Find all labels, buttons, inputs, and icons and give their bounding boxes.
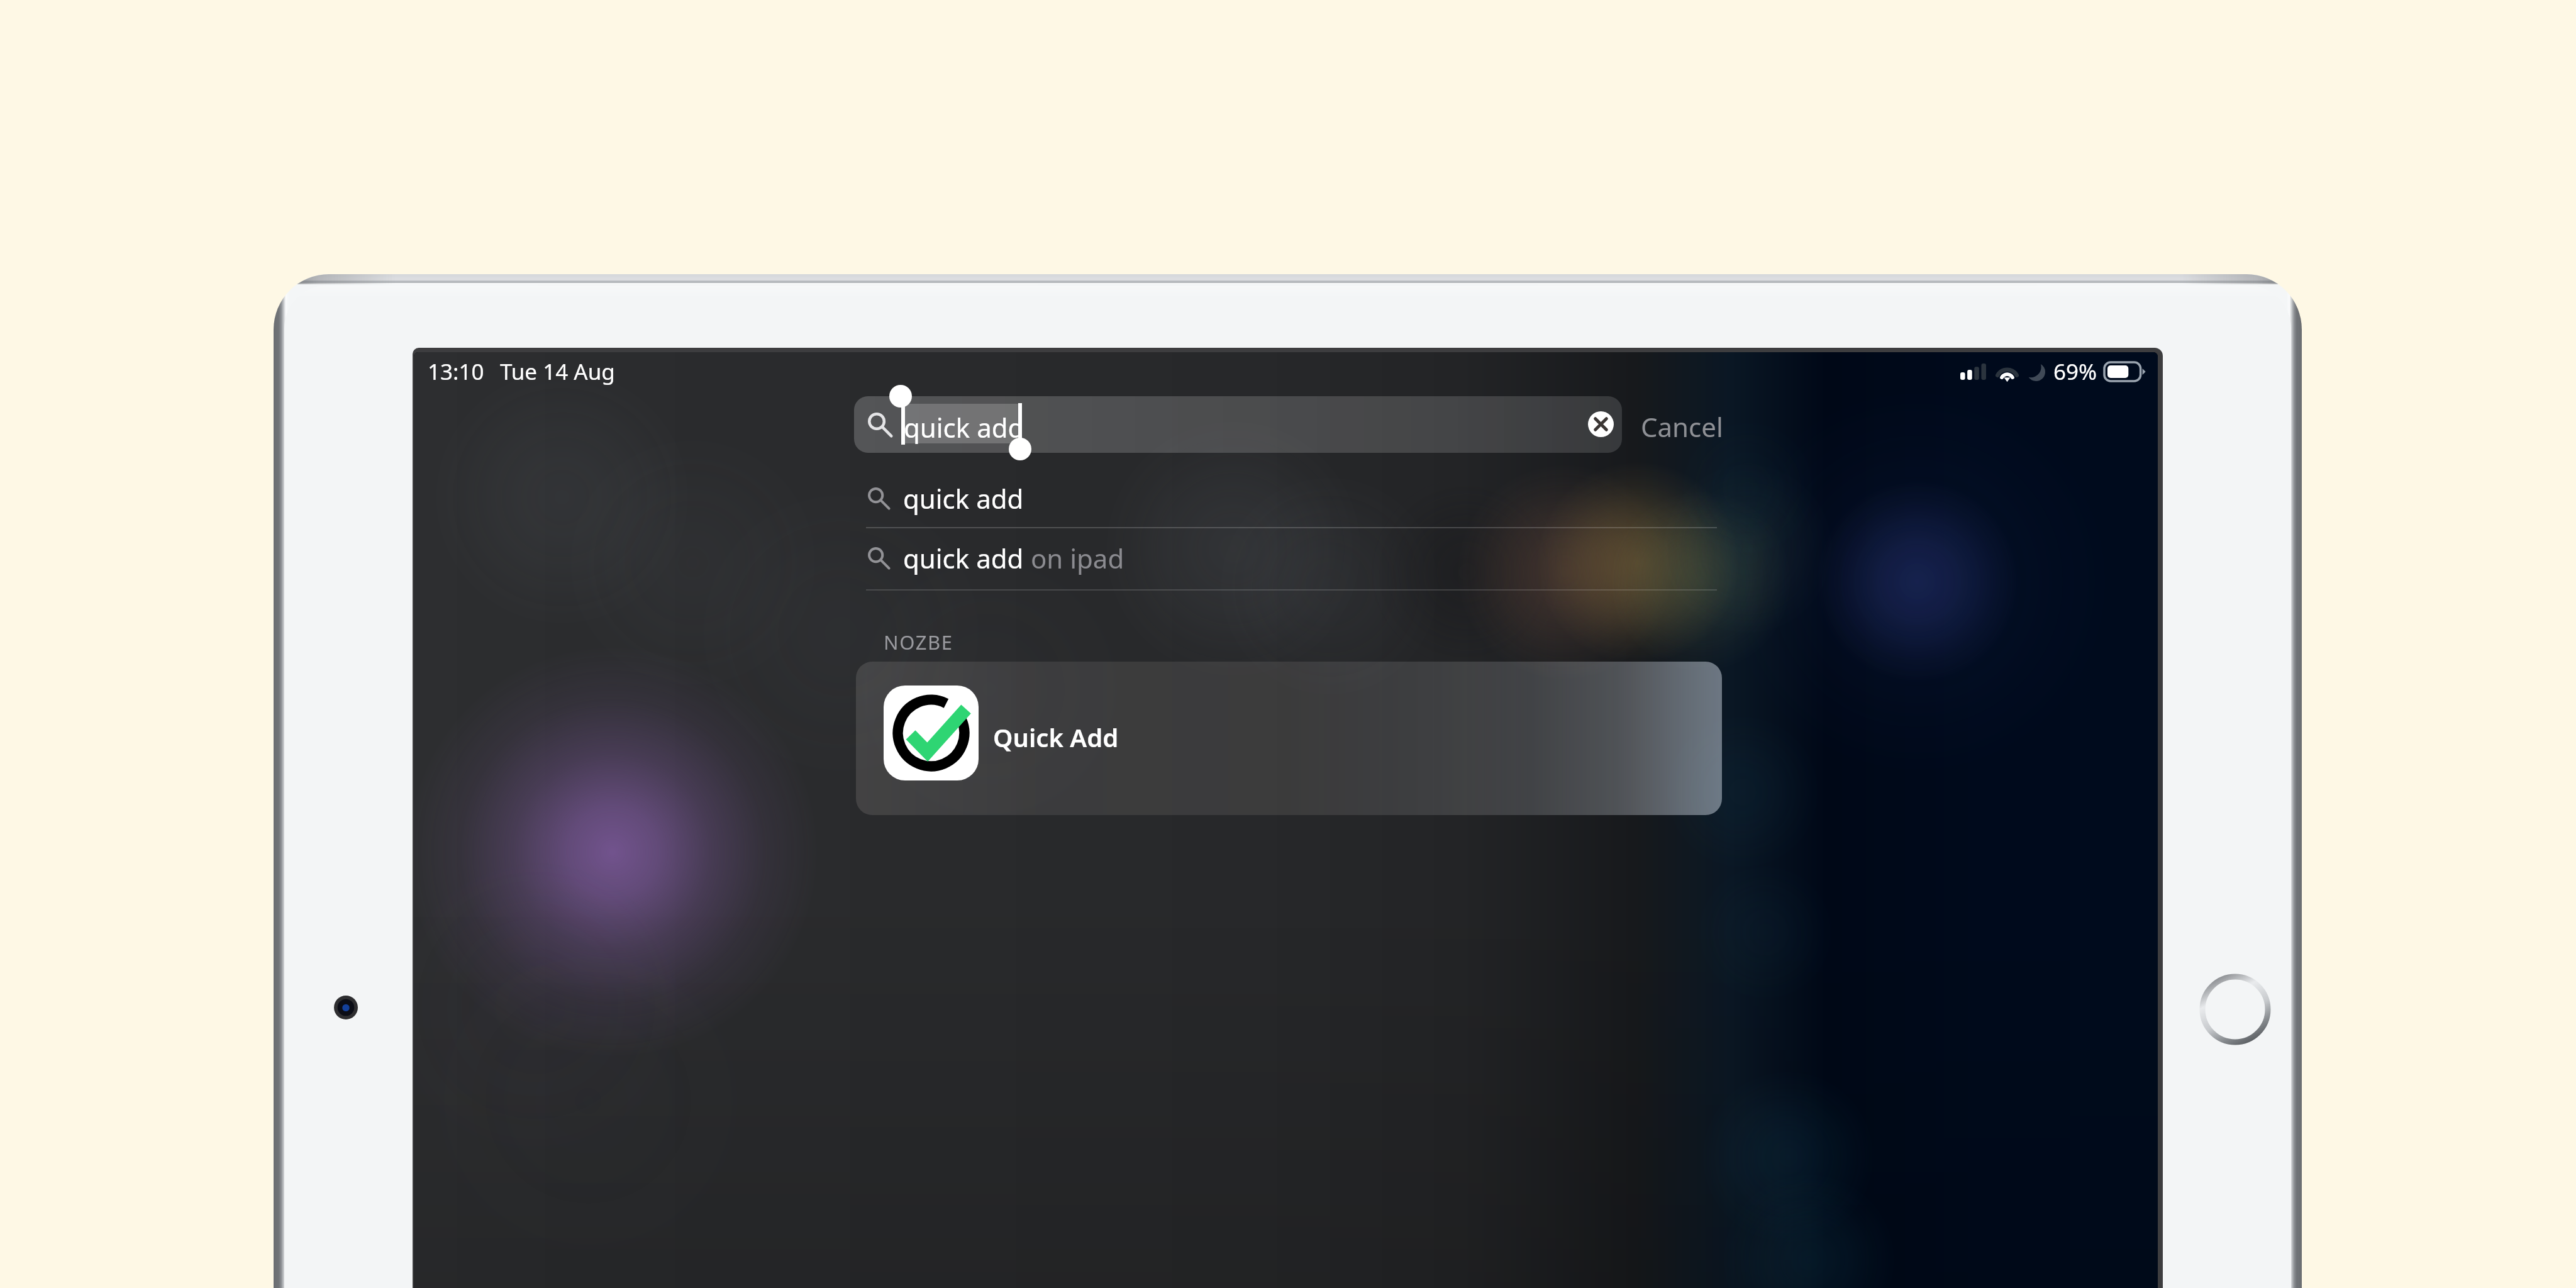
staticText: 69% bbox=[2053, 357, 2097, 387]
other: Home button bbox=[2199, 974, 2271, 1045]
button[interactable]: quick add bbox=[854, 530, 1722, 590]
other: Front camera bbox=[334, 996, 358, 1019]
staticText: quick add bbox=[904, 409, 1024, 445]
staticText: 13:10 bbox=[428, 357, 484, 387]
staticText: Tue 14 Aug bbox=[500, 357, 615, 387]
button[interactable]: Quick Add bbox=[856, 662, 1722, 815]
button[interactable]: quick add bbox=[854, 470, 1722, 530]
button[interactable]: Clear search text bbox=[1588, 411, 1614, 437]
button[interactable]: Cancel bbox=[1641, 409, 1723, 445]
staticText: quick add bbox=[903, 540, 1024, 576]
staticText: on ipad bbox=[1024, 540, 1124, 576]
staticText: quick add bbox=[903, 480, 1024, 516]
staticText: Quick Add bbox=[993, 720, 1119, 754]
button[interactable]: quick add bbox=[854, 396, 1622, 453]
staticText: NOZBE bbox=[884, 629, 953, 655]
